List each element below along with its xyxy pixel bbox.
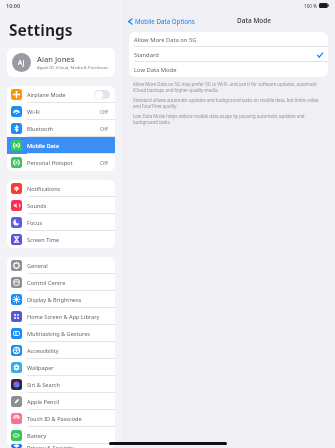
- staticText: Wallpaper: [27, 364, 54, 372]
- button[interactable]: Sounds: [7, 197, 115, 214]
- staticText: Multitasking & Gestures: [27, 330, 91, 338]
- staticText: Apple ID, iCloud, Media & Purchases: [37, 65, 109, 71]
- staticText: Privacy & Security: [27, 444, 74, 448]
- staticText: Notifications: [27, 185, 61, 193]
- button[interactable]: Home Screen & App Library: [7, 308, 115, 325]
- staticText: Screen Time: [27, 236, 60, 244]
- button[interactable]: Personal Hotspot: [7, 154, 115, 171]
- staticText: Wi-Fi: [27, 108, 40, 116]
- staticText: Airplane Mode: [27, 91, 66, 99]
- button[interactable]: General: [7, 257, 115, 274]
- staticText: Settings: [9, 19, 73, 40]
- staticText: General: [27, 262, 48, 270]
- button[interactable]: AJ: [7, 48, 115, 77]
- button[interactable]: Allow More Data on 5G: [129, 32, 328, 47]
- staticText: Personal Hotspot: [27, 159, 73, 167]
- button[interactable]: Notifications: [7, 180, 115, 197]
- staticText: Mobile Data Options: [135, 17, 195, 25]
- staticText: 10:00: [6, 2, 21, 9]
- button[interactable]: Wi-Fi: [7, 103, 115, 120]
- staticText: Off: [100, 159, 108, 166]
- button[interactable]: Mobile Data Options: [127, 17, 195, 25]
- staticText: Accessibility: [27, 347, 59, 355]
- staticText: AJ: [18, 58, 25, 67]
- button[interactable]: Low Data Mode: [129, 62, 328, 77]
- button[interactable]: Mobile Data: [7, 137, 115, 154]
- staticText: Mobile Data: [27, 142, 59, 150]
- button[interactable]: Privacy & Security: [7, 444, 115, 448]
- button[interactable]: Focus: [7, 214, 115, 231]
- button[interactable]: Battery: [7, 427, 115, 444]
- staticText: Off: [100, 125, 108, 132]
- staticText: Display & Brightness: [27, 296, 82, 304]
- button[interactable]: Apple Pencil: [7, 393, 115, 410]
- staticText: Off: [100, 108, 108, 115]
- staticText: Alan Jones: [37, 54, 75, 64]
- staticText: Low Data Mode: [134, 66, 177, 74]
- button[interactable]: Bluetooth: [7, 120, 115, 137]
- staticText: Control Centre: [27, 279, 66, 287]
- button[interactable]: Control Centre: [7, 274, 115, 291]
- staticText: Sounds: [27, 202, 47, 210]
- staticText: Data Mode: [237, 16, 272, 25]
- button[interactable]: Wallpaper: [7, 359, 115, 376]
- button[interactable]: Airplane Mode: [7, 86, 115, 103]
- staticText: Allow More Data on 5G: [134, 36, 197, 44]
- button[interactable]: Screen Time: [7, 231, 115, 248]
- staticText: Apple Pencil: [27, 398, 60, 406]
- staticText: Standard: [134, 51, 159, 59]
- staticText: Standard allows automatic updates and ba…: [133, 97, 324, 109]
- button[interactable]: Accessibility: [7, 342, 115, 359]
- staticText: Focus: [27, 219, 43, 227]
- staticText: Home Screen & App Library: [27, 313, 100, 321]
- staticText: 100 %: [304, 3, 317, 9]
- staticText: Bluetooth: [27, 125, 53, 133]
- button[interactable]: Airplane Mode toggle: [94, 90, 110, 99]
- staticText: Low Data Mode helps reduce mobile data u…: [133, 113, 324, 125]
- button[interactable]: Siri & Search: [7, 376, 115, 393]
- staticText: Touch ID & Passcode: [27, 415, 82, 423]
- button[interactable]: Standard: [129, 47, 328, 62]
- staticText: Allow More Data on 5G may prefer 5G to W…: [133, 81, 324, 93]
- staticText: Battery: [27, 432, 47, 440]
- button[interactable]: Touch ID & Passcode: [7, 410, 115, 427]
- button[interactable]: Display & Brightness: [7, 291, 115, 308]
- staticText: Siri & Search: [27, 381, 60, 389]
- button[interactable]: Multitasking & Gestures: [7, 325, 115, 342]
